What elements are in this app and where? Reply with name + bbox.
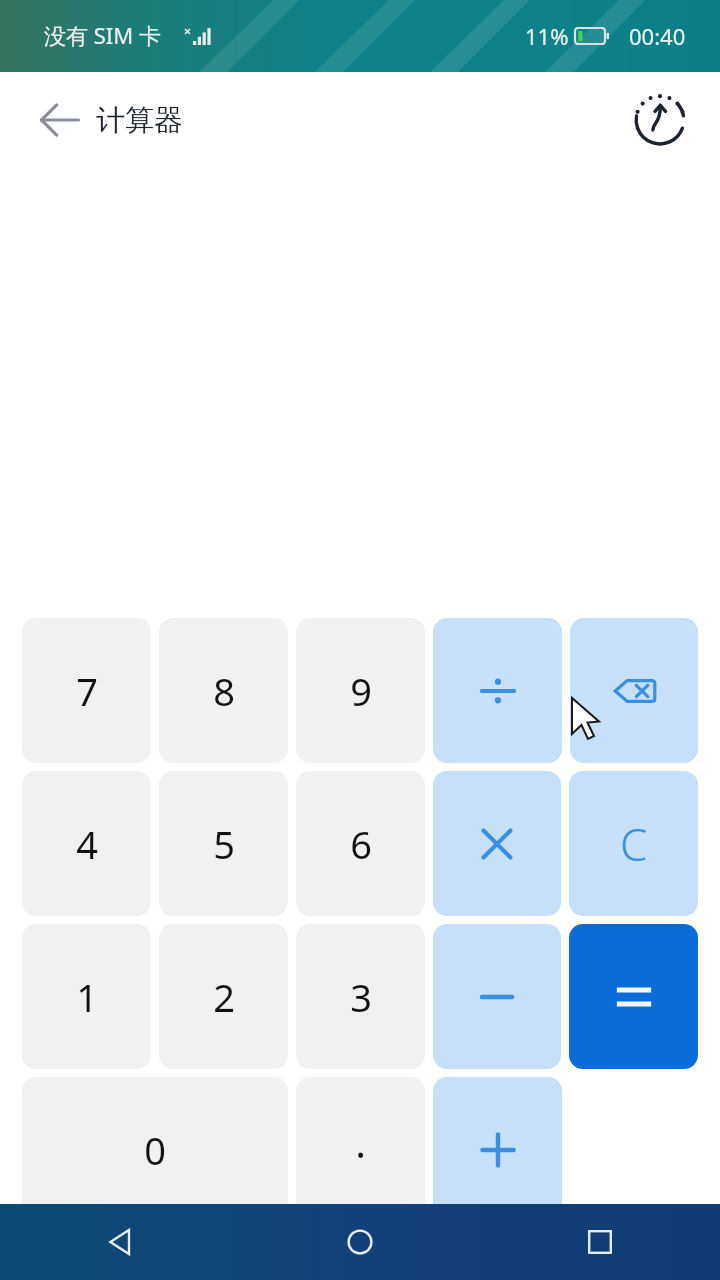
staticText: 计算器 [96, 102, 183, 139]
staticText: 4 [76, 818, 98, 870]
button[interactable]: Back [24, 84, 96, 156]
staticText: 1 [76, 971, 98, 1023]
button[interactable]: Multiply [433, 771, 561, 916]
button[interactable]: . [296, 1077, 425, 1222]
button[interactable]: Home [240, 1204, 480, 1280]
button[interactable]: Recents [480, 1204, 720, 1280]
staticText: C [620, 814, 648, 874]
staticText: 9 [350, 665, 372, 717]
button[interactable]: 4 [22, 771, 151, 916]
button[interactable]: Back [0, 1204, 240, 1280]
staticText: 5 [213, 818, 235, 870]
button[interactable]: Plus [433, 1077, 562, 1222]
button[interactable]: Minus [433, 924, 561, 1069]
staticText: . [355, 1115, 366, 1169]
button[interactable]: 3 [296, 924, 425, 1069]
button[interactable]: 6 [296, 771, 425, 916]
button[interactable]: 7 [22, 618, 151, 763]
button[interactable]: 5 [159, 771, 288, 916]
button[interactable]: Backspace [570, 618, 698, 763]
staticText: 没有 SIM 卡 [44, 20, 161, 50]
staticText: 0 [144, 1124, 166, 1176]
staticText: 3 [350, 971, 372, 1023]
button[interactable]: History [622, 82, 698, 158]
staticText: 00:40 [629, 21, 686, 51]
staticText: 2 [213, 971, 235, 1023]
button[interactable]: 8 [159, 618, 288, 763]
staticText: 7 [76, 665, 98, 717]
button[interactable]: C [569, 771, 698, 916]
button[interactable]: 2 [159, 924, 288, 1069]
button[interactable]: 9 [296, 618, 425, 763]
staticText: 6 [350, 818, 372, 870]
button[interactable]: Divide [433, 618, 562, 763]
button[interactable]: 0 [22, 1077, 288, 1222]
button[interactable]: Equals [569, 924, 698, 1069]
button[interactable]: 1 [22, 924, 151, 1069]
staticText: 8 [213, 665, 235, 717]
staticText: 11% [525, 21, 569, 51]
